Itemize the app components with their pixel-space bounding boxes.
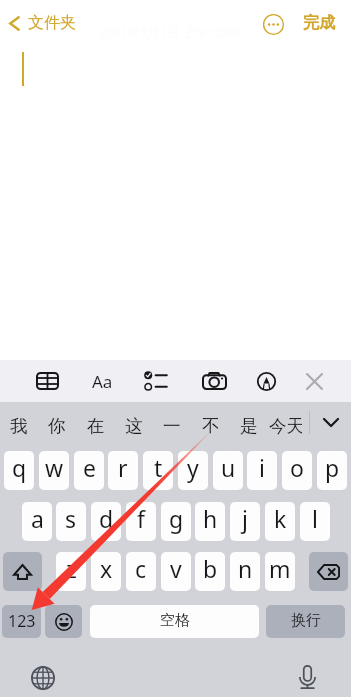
button[interactable]: 换行 [266,605,345,638]
staticText: 在 [87,415,105,437]
staticText: r [118,452,128,483]
staticText: e [83,452,96,483]
button[interactable]: 你 [38,405,76,446]
button[interactable]: h [195,502,225,541]
staticText: 不 [202,415,220,437]
button[interactable]: c [126,552,156,591]
staticText: p [325,452,340,483]
button[interactable]: Emoji [45,605,82,638]
button[interactable]: p [317,451,347,490]
staticText: j [242,503,248,534]
button[interactable]: j [230,502,260,541]
staticText: l [312,503,318,534]
staticText: w [45,452,64,483]
button[interactable]: Checklist [138,364,172,398]
button[interactable]: l [300,502,330,541]
button[interactable]: Table [30,364,64,398]
button[interactable]: i [247,451,277,490]
button[interactable]: q [4,451,34,490]
staticText: s [65,503,77,534]
button[interactable]: 这 [115,405,153,446]
staticText: 一 [163,415,181,437]
staticText: o [290,452,304,483]
staticText: v [170,553,182,584]
button[interactable]: y [178,451,208,490]
button[interactable]: a [22,502,52,541]
staticText: z [66,553,77,584]
button[interactable]: m [265,552,295,591]
button[interactable]: Change keyboard [28,663,58,693]
button[interactable]: Markup [249,364,283,398]
button[interactable]: t [143,451,173,490]
staticText: m [269,553,291,584]
staticText: a [31,503,44,534]
button[interactable]: More options [259,10,287,38]
button[interactable]: Text format [85,364,119,398]
button[interactable]: 不 [192,405,230,446]
staticText: 这 [125,415,143,437]
button[interactable]: u [213,451,243,490]
button[interactable]: g [161,502,191,541]
staticText: 是 [240,415,258,437]
staticText: 完成 [303,13,335,33]
button[interactable]: e [74,451,104,490]
button[interactable]: Shift [3,552,42,591]
button[interactable]: 空格 [90,605,259,638]
staticText: 换行 [291,611,321,630]
button[interactable]: z [56,552,86,591]
staticText: d [99,503,114,534]
button[interactable]: 我 [0,405,38,446]
button[interactable]: s [56,502,86,541]
button[interactable]: 文件夹 [0,6,86,40]
button[interactable]: b [195,552,225,591]
staticText: u [221,452,236,483]
button[interactable]: Camera [197,364,231,398]
staticText: x [100,553,113,584]
staticText: 今天 [269,415,302,437]
button[interactable]: f [126,502,156,541]
button[interactable]: r [108,451,138,490]
staticText: g [169,503,184,534]
button[interactable]: 今天 [268,405,302,446]
button[interactable]: w [39,451,69,490]
button[interactable]: Backspace [309,552,348,591]
button[interactable]: v [161,552,191,591]
staticText: 我 [10,415,28,437]
staticText: 你 [48,415,66,437]
staticText: f [137,503,145,534]
staticText: c [135,553,147,584]
staticText: y [187,452,199,483]
staticText: Aa [92,370,113,393]
button[interactable]: x [91,552,121,591]
staticText: b [203,553,218,584]
button[interactable]: 在 [77,405,115,446]
staticText: i [259,452,265,483]
button[interactable]: d [91,502,121,541]
staticText: k [274,503,287,534]
button[interactable]: 一 [153,405,191,446]
staticText: q [12,452,27,483]
staticText: 空格 [160,611,190,630]
button[interactable]: n [230,552,260,591]
button[interactable]: 是 [230,405,268,446]
button[interactable]: Dictation [292,662,322,692]
button[interactable]: Hide keyboard [297,364,331,398]
button[interactable]: 123 [2,605,41,638]
button[interactable]: 完成 [301,9,337,37]
staticText: t [154,452,163,483]
staticText: h [203,503,218,534]
button[interactable]: Expand suggestions [310,402,351,443]
staticText: 123 [8,610,36,632]
staticText: 文件夹 [28,13,76,33]
staticText: n [238,553,253,584]
button[interactable]: k [265,502,295,541]
button[interactable]: o [282,451,312,490]
